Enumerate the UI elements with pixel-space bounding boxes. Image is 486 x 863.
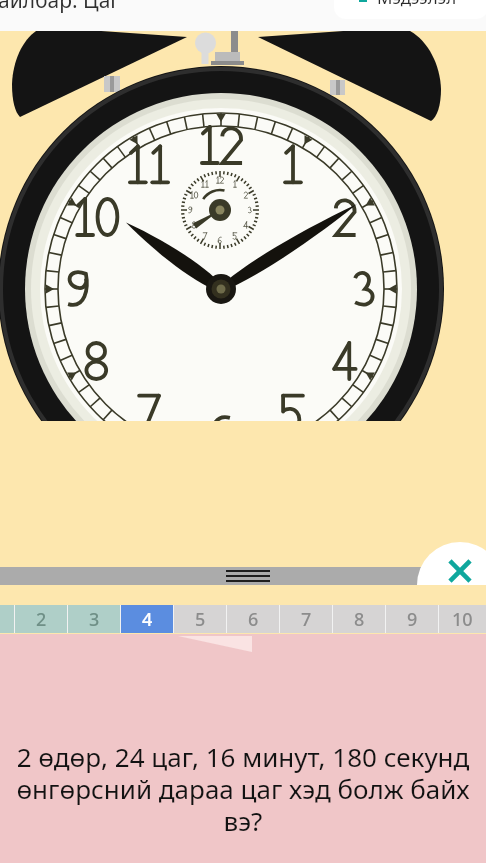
staticText: 7 <box>301 607 312 632</box>
staticText: 3 <box>89 607 100 632</box>
button[interactable]: 7 <box>280 605 332 633</box>
staticText: 5 <box>195 607 206 632</box>
button[interactable]: 6 <box>227 605 279 633</box>
button[interactable]: 5 <box>174 605 226 633</box>
button[interactable]: Мэдээлэл <box>334 0 486 19</box>
staticText: 4 <box>142 607 153 632</box>
button[interactable]: 3 <box>68 605 120 633</box>
button[interactable]: 4 <box>121 605 173 633</box>
staticText: айлбар. Цаг <box>0 0 120 15</box>
staticText: 6 <box>248 607 259 632</box>
staticText: Мэдээлэл <box>377 0 457 9</box>
button[interactable]: 2 <box>15 605 67 633</box>
staticText: 9 <box>407 607 418 632</box>
staticText: 2 <box>36 607 47 632</box>
button[interactable]: 10 <box>439 605 486 633</box>
button[interactable]: 9 <box>386 605 438 633</box>
button[interactable]: 8 <box>333 605 385 633</box>
button[interactable]: Close <box>380 520 486 585</box>
staticText: 10 <box>452 607 473 632</box>
staticText: 2 өдөр, 24 цаг, 16 минут, 180 секунд өнг… <box>0 739 486 839</box>
staticText: 8 <box>354 607 365 632</box>
